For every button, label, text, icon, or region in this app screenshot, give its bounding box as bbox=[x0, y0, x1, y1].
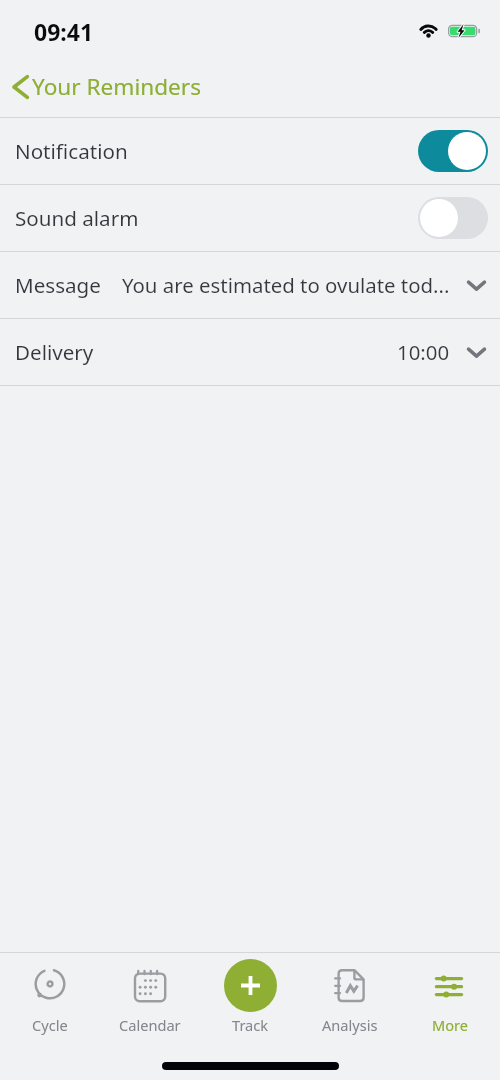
staticText: Track bbox=[232, 1015, 269, 1035]
staticText: Cycle bbox=[32, 1015, 68, 1035]
staticText: Delivery bbox=[15, 338, 94, 366]
button[interactable]: Analysis bbox=[300, 953, 400, 1047]
button[interactable]: Delivery bbox=[0, 319, 500, 385]
staticText: Calendar bbox=[119, 1015, 181, 1035]
other: Analysis bbox=[332, 966, 368, 1002]
button[interactable]: Track bbox=[200, 953, 300, 1047]
staticText: You are estimated to ovulate tod... bbox=[122, 271, 450, 299]
other: Calendar bbox=[132, 966, 168, 1002]
button[interactable]: Cycle bbox=[0, 953, 100, 1047]
other: Track bbox=[224, 959, 277, 1012]
button[interactable]: Calendar bbox=[100, 953, 200, 1047]
button[interactable]: More bbox=[400, 953, 500, 1047]
staticText: 09:41 bbox=[34, 16, 94, 47]
staticText: Notification bbox=[15, 137, 128, 165]
staticText: 10:00 bbox=[397, 338, 450, 366]
button[interactable]: Sound alarm bbox=[0, 185, 500, 251]
staticText: Your Reminders bbox=[32, 71, 202, 102]
other: Wi-Fi bbox=[418, 23, 439, 39]
staticText: More bbox=[432, 1015, 469, 1035]
other: Back bbox=[11, 74, 30, 100]
other: More bbox=[432, 966, 468, 1002]
button[interactable]: Back bbox=[0, 71, 212, 102]
other: Cycle bbox=[32, 966, 68, 1002]
other: Expand bbox=[467, 346, 486, 359]
staticText: Analysis bbox=[322, 1015, 378, 1035]
button[interactable]: Switch on bbox=[418, 130, 488, 172]
other: Battery charging bbox=[448, 22, 480, 40]
button[interactable]: Notification bbox=[0, 118, 500, 184]
staticText: Message bbox=[15, 271, 101, 299]
button[interactable]: Switch off bbox=[418, 197, 488, 239]
button[interactable]: Message bbox=[0, 252, 500, 318]
other: Expand bbox=[467, 279, 486, 292]
staticText: Sound alarm bbox=[15, 204, 139, 232]
